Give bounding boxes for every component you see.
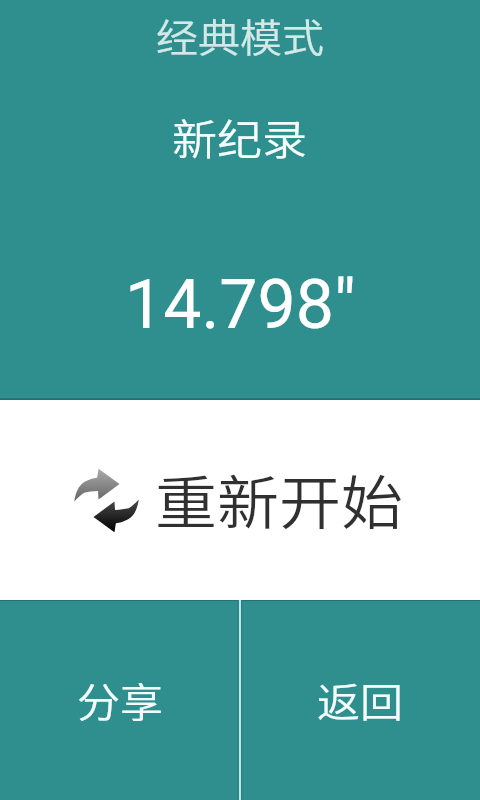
staticText: 返回 xyxy=(317,670,403,728)
other: 重新开始 xyxy=(74,468,139,533)
staticText: 新纪录 xyxy=(172,106,308,167)
staticText: 分享 xyxy=(77,670,163,728)
staticText: 14.798" xyxy=(125,265,356,345)
button[interactable]: 重新开始 xyxy=(0,400,480,600)
button[interactable]: 分享 xyxy=(0,600,240,800)
staticText: 重新开始 xyxy=(155,457,404,541)
button[interactable]: 返回 xyxy=(240,600,480,800)
staticText: 经典模式 xyxy=(156,6,325,63)
